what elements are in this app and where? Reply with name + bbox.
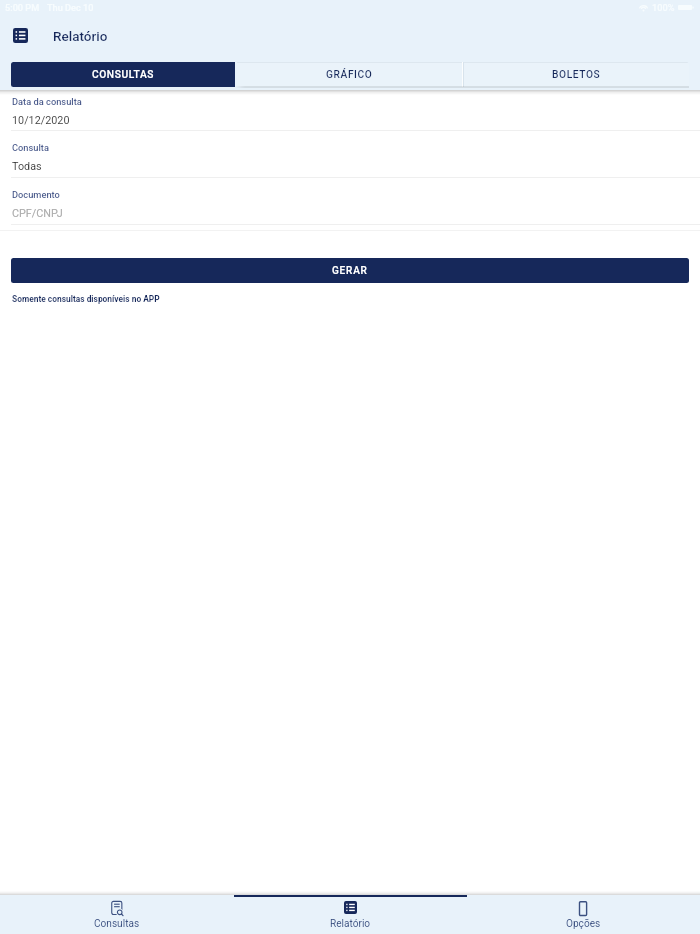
- staticText: CONSULTAS: [92, 69, 155, 81]
- staticText: 5:00 PM: [5, 2, 40, 13]
- button[interactable]: GERAR: [11, 258, 689, 283]
- button[interactable]: Documento: [0, 178, 700, 225]
- staticText: Consulta: [12, 142, 49, 153]
- staticText: CPF/CNPJ: [12, 207, 63, 220]
- button[interactable]: Relatório: [234, 895, 467, 934]
- button[interactable]: GRÁFICO: [237, 62, 462, 87]
- button[interactable]: BOLETOS: [464, 62, 689, 87]
- staticText: 100%: [652, 2, 675, 13]
- staticText: GRÁFICO: [326, 69, 373, 81]
- staticText: Somente consultas disponíveis no APP: [12, 294, 160, 304]
- staticText: Thu Dec 10: [47, 2, 94, 13]
- staticText: Opções: [566, 918, 601, 930]
- staticText: Documento: [12, 189, 60, 200]
- staticText: Relatório: [330, 918, 371, 930]
- staticText: Consultas: [94, 918, 140, 930]
- staticText: Data da consulta: [12, 96, 82, 107]
- staticText: Relatório: [53, 28, 108, 44]
- button[interactable]: CONSULTAS: [11, 62, 235, 87]
- staticText: GERAR: [332, 265, 368, 277]
- staticText: BOLETOS: [552, 69, 601, 81]
- button[interactable]: Consultas: [0, 895, 234, 934]
- button[interactable]: Menu: [13, 28, 28, 43]
- staticText: 10/12/2020: [12, 114, 70, 127]
- button[interactable]: Consulta: [0, 131, 700, 178]
- button[interactable]: Data da consulta: [0, 90, 700, 131]
- staticText: Todas: [12, 160, 42, 173]
- button[interactable]: Opções: [467, 895, 700, 934]
